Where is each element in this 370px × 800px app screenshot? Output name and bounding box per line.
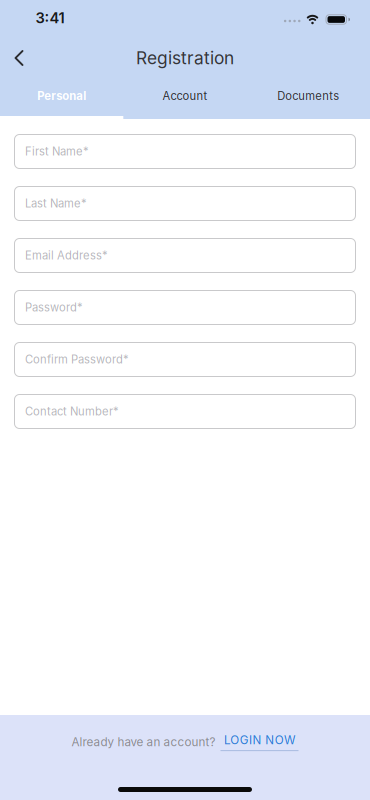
staticText: Account (162, 89, 207, 103)
staticText: Personal (37, 89, 86, 103)
button[interactable]: LOGIN NOW (220, 733, 298, 751)
button[interactable]: Back (0, 50, 24, 66)
button[interactable]: Password* (14, 290, 356, 325)
staticText: Password* (25, 301, 83, 314)
staticText: LOGIN NOW (224, 733, 295, 747)
button[interactable]: Personal (0, 80, 123, 112)
button[interactable]: Email Address* (14, 238, 356, 273)
staticText: Registration (136, 47, 234, 68)
button[interactable]: Account (123, 80, 247, 112)
staticText: Contact Number* (25, 405, 119, 418)
staticText: Confirm Password* (25, 353, 129, 366)
button[interactable]: Last Name* (14, 186, 356, 221)
staticText: 3:41 (35, 9, 64, 27)
staticText: First Name* (25, 145, 89, 158)
button[interactable]: Documents (247, 80, 370, 112)
staticText: Documents (277, 89, 339, 103)
button[interactable]: Confirm Password* (14, 342, 356, 377)
staticText: Email Address* (25, 249, 108, 262)
staticText: Already have an account? (71, 735, 215, 749)
staticText: Last Name* (25, 197, 87, 210)
button[interactable]: First Name* (14, 134, 356, 169)
button[interactable]: Contact Number* (14, 394, 356, 429)
